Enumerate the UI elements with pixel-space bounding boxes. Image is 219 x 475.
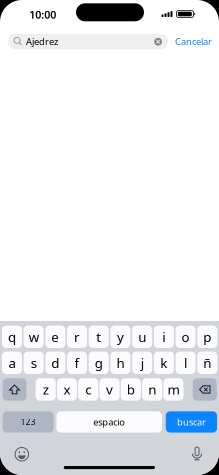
staticText: p	[203, 328, 211, 346]
staticText: f	[74, 354, 79, 372]
button[interactable]: espacio	[56, 411, 162, 433]
staticText: t	[96, 328, 101, 346]
button[interactable]: c	[78, 378, 98, 401]
button[interactable]: g	[89, 351, 109, 374]
staticText: m	[167, 381, 179, 398]
staticText: e	[51, 328, 59, 346]
staticText: buscar	[177, 416, 206, 428]
button[interactable]: Cancelar	[175, 34, 217, 48]
staticText: 10:00	[29, 7, 56, 22]
button[interactable]: m	[163, 378, 183, 401]
button[interactable]: f	[67, 351, 87, 374]
staticText: q	[8, 328, 16, 346]
staticText: v	[106, 381, 113, 398]
button[interactable]: t	[89, 325, 109, 348]
button[interactable]: z	[36, 378, 56, 401]
button[interactable]: Retroceso	[193, 378, 217, 401]
button[interactable]: l	[175, 351, 196, 374]
staticText: l	[184, 354, 187, 372]
button[interactable]: o	[175, 325, 196, 348]
button[interactable]: v	[99, 378, 120, 401]
staticText: k	[160, 354, 167, 372]
button[interactable]: h	[110, 351, 130, 374]
staticText: g	[95, 354, 103, 372]
button[interactable]: Emoji	[15, 447, 29, 461]
staticText: a	[8, 354, 15, 372]
button[interactable]: Dictado	[192, 447, 202, 460]
staticText: r	[74, 328, 80, 346]
staticText: c	[85, 381, 91, 398]
staticText: s	[31, 354, 37, 372]
staticText: n	[148, 381, 156, 398]
button[interactable]: n	[142, 378, 162, 401]
button[interactable]: b	[121, 378, 141, 401]
button[interactable]: e	[45, 325, 65, 348]
staticText: y	[117, 328, 124, 346]
button[interactable]: a	[2, 351, 22, 374]
button[interactable]: i	[154, 325, 174, 348]
button[interactable]: j	[132, 351, 152, 374]
staticText: b	[127, 381, 135, 398]
button[interactable]: u	[132, 325, 152, 348]
staticText: u	[138, 328, 146, 346]
button[interactable]: r	[67, 325, 87, 348]
staticText: 123	[21, 417, 36, 427]
button[interactable]: p	[197, 325, 217, 348]
button[interactable]: Mayúsculas	[3, 378, 26, 401]
staticText: z	[43, 381, 49, 398]
button[interactable]: x	[57, 378, 77, 401]
staticText: i	[162, 328, 165, 346]
button[interactable]: 123	[3, 411, 54, 433]
staticText: x	[63, 381, 70, 398]
button[interactable]: ñ	[197, 351, 217, 374]
button[interactable]: k	[154, 351, 174, 374]
button[interactable]: q	[2, 325, 22, 348]
staticText: h	[116, 354, 124, 372]
staticText: Cancelar	[175, 35, 212, 48]
button[interactable]: y	[110, 325, 130, 348]
button[interactable]: s	[24, 351, 44, 374]
staticText: Ajedrez	[26, 35, 58, 48]
staticText: espacio	[93, 416, 125, 428]
button[interactable]: Borrar texto	[154, 37, 163, 46]
button[interactable]: d	[45, 351, 65, 374]
button[interactable]: w	[24, 325, 44, 348]
staticText: ñ	[203, 354, 211, 372]
button[interactable]: buscar	[166, 411, 217, 433]
staticText: w	[29, 328, 39, 346]
staticText: d	[51, 354, 59, 372]
staticText: j	[141, 354, 144, 372]
staticText: o	[182, 328, 190, 346]
